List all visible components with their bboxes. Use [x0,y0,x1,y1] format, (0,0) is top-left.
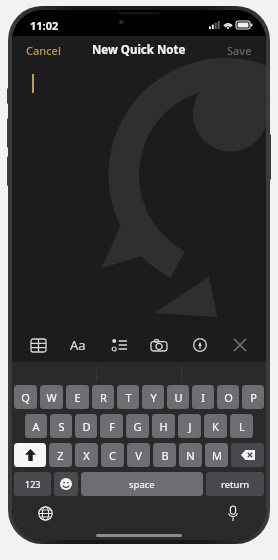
button[interactable]: Z [49,443,72,467]
button[interactable]: V [127,443,150,467]
staticText: Save [227,43,252,58]
button[interactable]: M [205,443,228,467]
button[interactable]: H [152,414,175,438]
staticText: Y [150,390,157,405]
staticText: W [46,390,57,405]
staticText: V [135,448,142,463]
staticText: O [224,390,233,405]
staticText: P [250,390,257,405]
button[interactable]: J [178,414,201,438]
staticText: B [161,448,169,463]
button[interactable]: Q [14,385,37,409]
button[interactable]: Close keyboard [225,330,255,360]
staticText: D [82,419,91,434]
button[interactable]: U [167,385,189,409]
button[interactable]: R [92,385,114,409]
staticText: S [58,419,65,434]
button[interactable]: X [75,443,98,467]
staticText: return [221,478,250,491]
staticText: New Quick Note [92,42,186,58]
staticText: Z [57,448,64,463]
button[interactable]: Markup [185,330,215,360]
staticText: Q [21,390,30,405]
staticText: Aa [70,336,86,354]
staticText: space [129,478,155,491]
button[interactable] [14,443,46,467]
button[interactable]: D [75,414,97,438]
button[interactable]: Text format [63,330,93,360]
staticText: G [133,419,142,434]
button[interactable]: Camera [144,330,174,360]
button[interactable]: A [25,414,47,438]
button[interactable] [231,443,264,467]
button[interactable]: G [126,414,149,438]
button[interactable]: return [206,472,264,496]
button[interactable]: Table [23,330,53,360]
button[interactable]: F [100,414,123,438]
button[interactable]: S [50,414,72,438]
button[interactable]: B [153,443,176,467]
button[interactable]: P [242,385,264,409]
staticText: X [83,448,90,463]
button[interactable]: K [204,414,227,438]
button[interactable]: L [230,414,253,438]
button[interactable]: Change keyboard [34,502,56,524]
button[interactable]: O [217,385,239,409]
button[interactable]: I [192,385,214,409]
staticText: 11:02 [30,18,59,33]
staticText: Cancel [26,43,61,58]
staticText: E [74,390,81,405]
button[interactable]: Y [142,385,164,409]
staticText: 123 [25,478,41,490]
button[interactable]: C [101,443,124,467]
staticText: N [186,448,195,463]
staticText: A [32,419,40,434]
button[interactable] [54,472,78,496]
staticText: F [109,419,115,434]
staticText: C [109,448,116,463]
staticText: I [201,390,205,405]
button[interactable]: N [179,443,202,467]
button[interactable]: E [66,385,89,409]
button[interactable]: T [117,385,139,409]
staticText: L [239,419,245,434]
button[interactable]: W [40,385,63,409]
staticText: K [212,419,219,434]
staticText: T [125,390,132,405]
staticText: J [188,419,192,434]
button[interactable]: Checklist [104,330,134,360]
staticText: R [100,390,107,405]
button[interactable]: 123 [14,472,51,496]
button[interactable]: Dictate [222,502,244,524]
staticText: H [159,419,168,434]
button[interactable]: space [81,472,203,496]
button[interactable]: Save [213,39,266,62]
staticText: U [174,390,183,405]
button[interactable]: Cancel [12,39,75,62]
staticText: M [212,448,222,463]
